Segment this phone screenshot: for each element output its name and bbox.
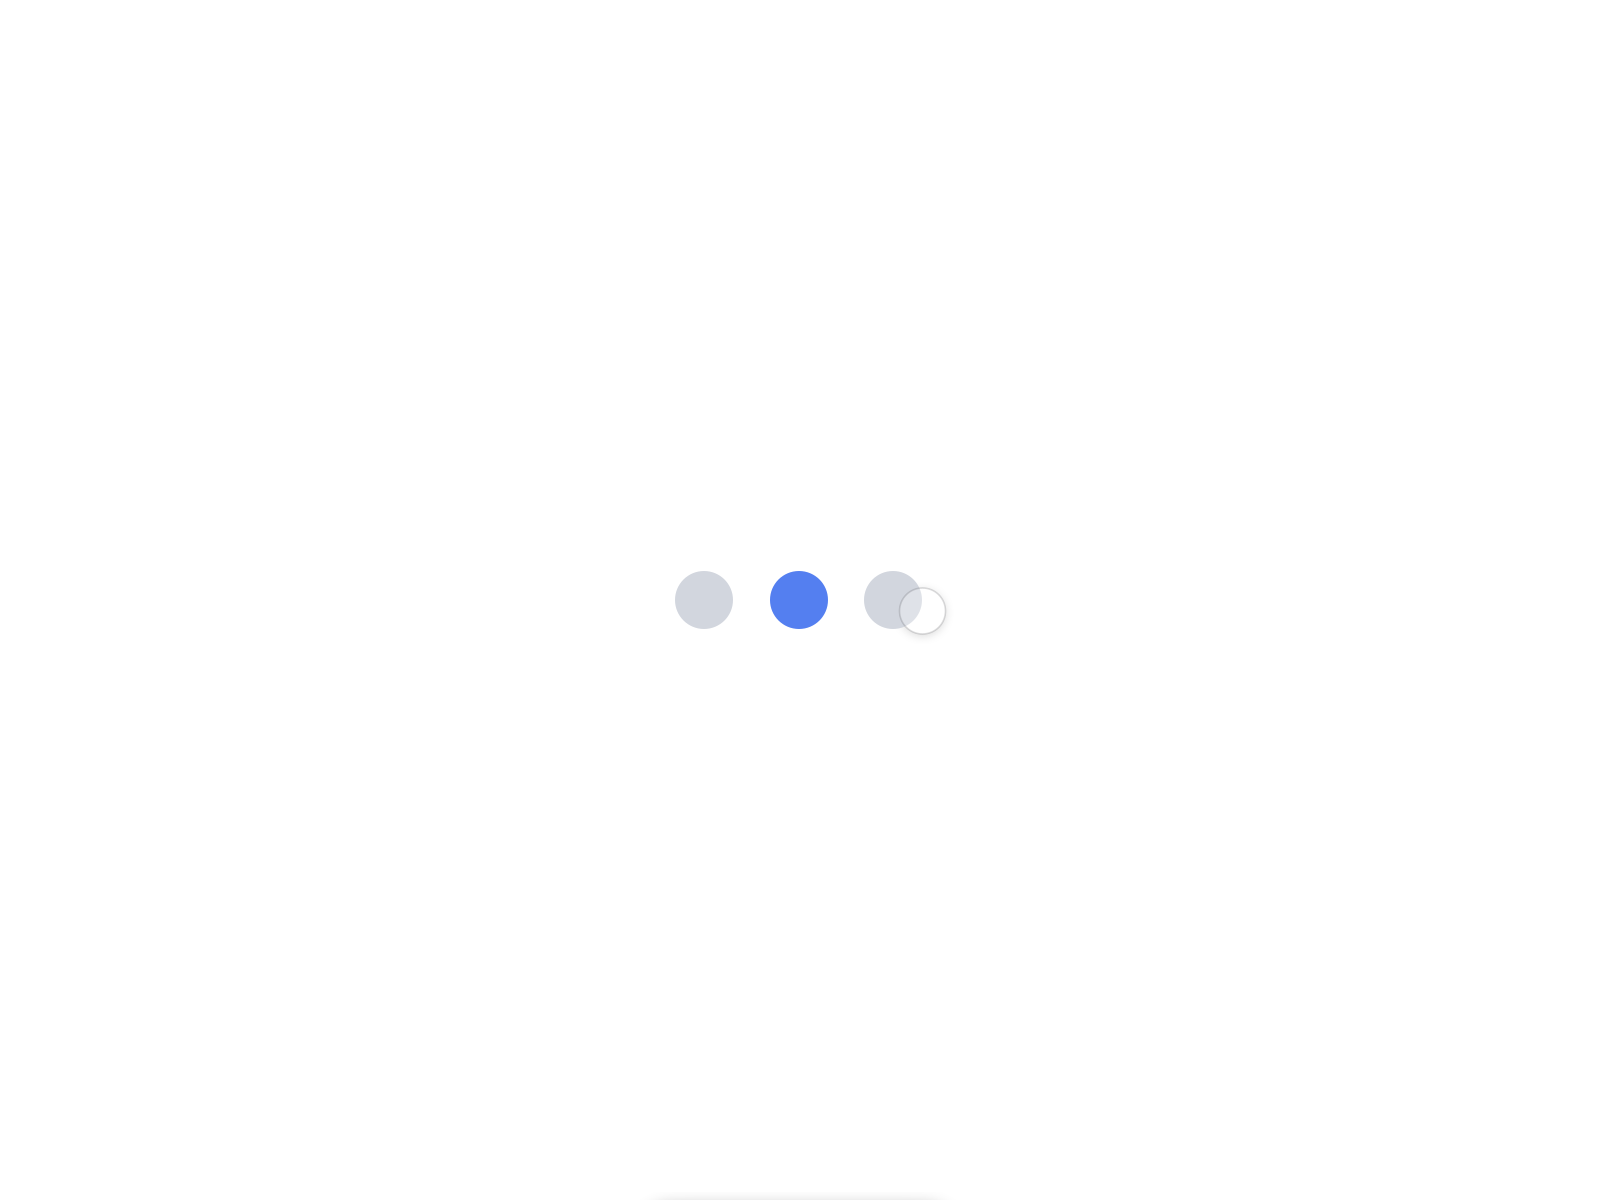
button[interactable]: Page 2, current page: [770, 571, 828, 629]
button[interactable]: Page 1: [675, 571, 733, 629]
button[interactable]: Page 3: [864, 571, 922, 629]
